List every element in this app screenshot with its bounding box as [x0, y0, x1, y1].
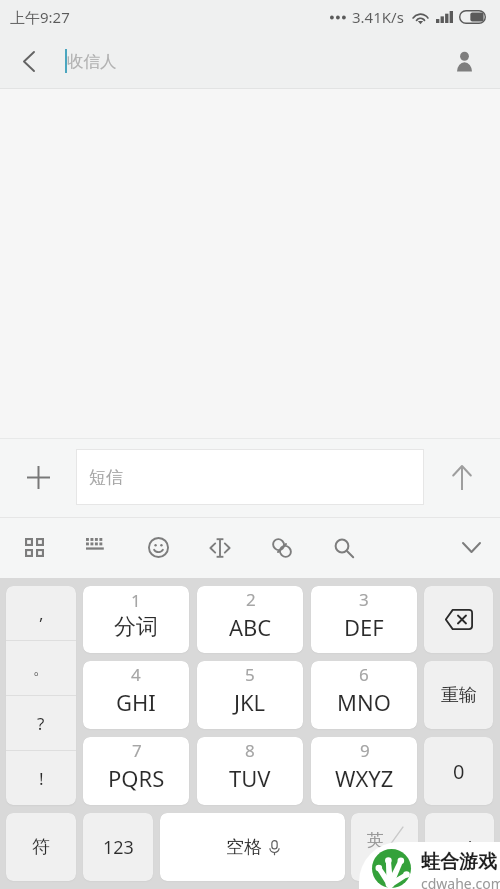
button[interactable]: 3	[311, 586, 417, 653]
button[interactable]: 英	[351, 813, 418, 881]
staticText: MNO	[337, 687, 391, 717]
button[interactable]: Apps	[3, 517, 65, 578]
button[interactable]: 4	[83, 661, 189, 729]
button[interactable]: Keyboard layout	[65, 517, 127, 578]
button[interactable]: Edit cursor	[189, 517, 251, 578]
staticText: 0	[453, 758, 465, 785]
staticText: 英	[367, 830, 384, 851]
staticText: ABC	[229, 612, 272, 642]
staticText: 7	[132, 739, 142, 762]
staticText: 分词	[114, 613, 158, 641]
staticText: 收信人	[67, 51, 117, 72]
button[interactable]: 。	[6, 641, 76, 695]
staticText: ,	[39, 602, 44, 625]
staticText: 9	[360, 739, 370, 762]
button[interactable]: Choose contact	[436, 34, 492, 89]
button[interactable]: ,	[6, 586, 76, 640]
button[interactable]: !	[6, 751, 76, 805]
button[interactable]: 7	[83, 737, 189, 805]
staticText: 8	[245, 739, 255, 762]
button[interactable]: Emoji	[127, 517, 189, 578]
button[interactable]: Add attachment	[0, 438, 76, 517]
button[interactable]: Back	[0, 34, 56, 89]
staticText: DEF	[344, 612, 384, 642]
staticText: 。	[33, 658, 50, 679]
staticText: ?	[37, 712, 45, 735]
button[interactable]: 6	[311, 661, 417, 729]
staticText: GHI	[116, 687, 156, 717]
staticText: 重输	[441, 684, 477, 707]
staticText: 空格	[226, 836, 262, 859]
button[interactable]: 9	[311, 737, 417, 805]
button[interactable]: 2	[197, 586, 303, 653]
button[interactable]: 8	[197, 737, 303, 805]
staticText: 短信	[89, 467, 123, 488]
button[interactable]: Hide keyboard	[442, 517, 500, 578]
button[interactable]: 1	[83, 586, 189, 653]
staticText: TUV	[229, 763, 271, 793]
staticText: 2	[246, 588, 256, 611]
button[interactable]: Send	[424, 438, 500, 517]
button[interactable]: 重输	[424, 661, 493, 729]
staticText: 中	[386, 845, 403, 866]
staticText: PQRS	[108, 763, 165, 793]
staticText: 符	[32, 836, 50, 859]
button[interactable]: Search	[313, 517, 375, 578]
staticText: !	[39, 767, 44, 790]
staticText: 3.41K/s	[352, 7, 404, 27]
staticText: 123	[103, 835, 134, 860]
button[interactable]	[424, 586, 493, 653]
button[interactable]: 短信	[76, 449, 424, 505]
staticText: 4	[131, 663, 141, 686]
button[interactable]: ?	[6, 696, 76, 750]
staticText: 3	[359, 588, 369, 611]
button[interactable]: Attach	[251, 517, 313, 578]
staticText: 5	[245, 663, 255, 686]
staticText: 1	[131, 589, 141, 612]
button[interactable]: 符	[6, 813, 76, 881]
staticText: JKL	[234, 687, 266, 717]
button[interactable]	[425, 813, 494, 881]
staticText: 上午9:27	[10, 7, 70, 27]
button[interactable]: 0	[424, 737, 493, 805]
staticText: cdwahe.com	[421, 874, 500, 889]
staticText: WXYZ	[335, 763, 394, 793]
staticText: 6	[359, 663, 369, 686]
button[interactable]: 5	[197, 661, 303, 729]
staticText: 蛙合游戏	[421, 850, 497, 874]
button[interactable]: 空格	[160, 813, 345, 881]
button[interactable]: 123	[83, 813, 153, 881]
